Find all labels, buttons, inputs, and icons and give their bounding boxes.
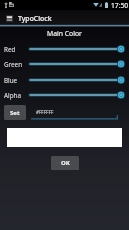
staticText: #FFFFFF [36, 109, 54, 115]
staticText: 17:50 [111, 1, 129, 10]
staticText: Alpha [4, 91, 21, 100]
button[interactable]: Red [0, 42, 129, 56]
button[interactable]: OK [51, 156, 79, 170]
other: Wi-Fi [93, 2, 99, 7]
staticText: Main Color [0, 29, 129, 38]
other: Battery [105, 2, 108, 8]
staticText: Green [4, 60, 23, 69]
staticText: Red [4, 45, 16, 54]
button[interactable]: Green [0, 57, 129, 71]
staticText: TypoClock [18, 14, 52, 23]
staticText: OK [61, 159, 70, 167]
other: Signal [99, 2, 102, 7]
staticText: Set [10, 109, 20, 117]
button[interactable]: #FFFFFF [31, 105, 118, 120]
button[interactable]: Set [4, 105, 26, 120]
button[interactable]: Alpha [0, 88, 129, 102]
button[interactable]: Blue [0, 73, 129, 87]
staticText: Blue [4, 76, 18, 85]
other: USB connected [4, 2, 8, 8]
